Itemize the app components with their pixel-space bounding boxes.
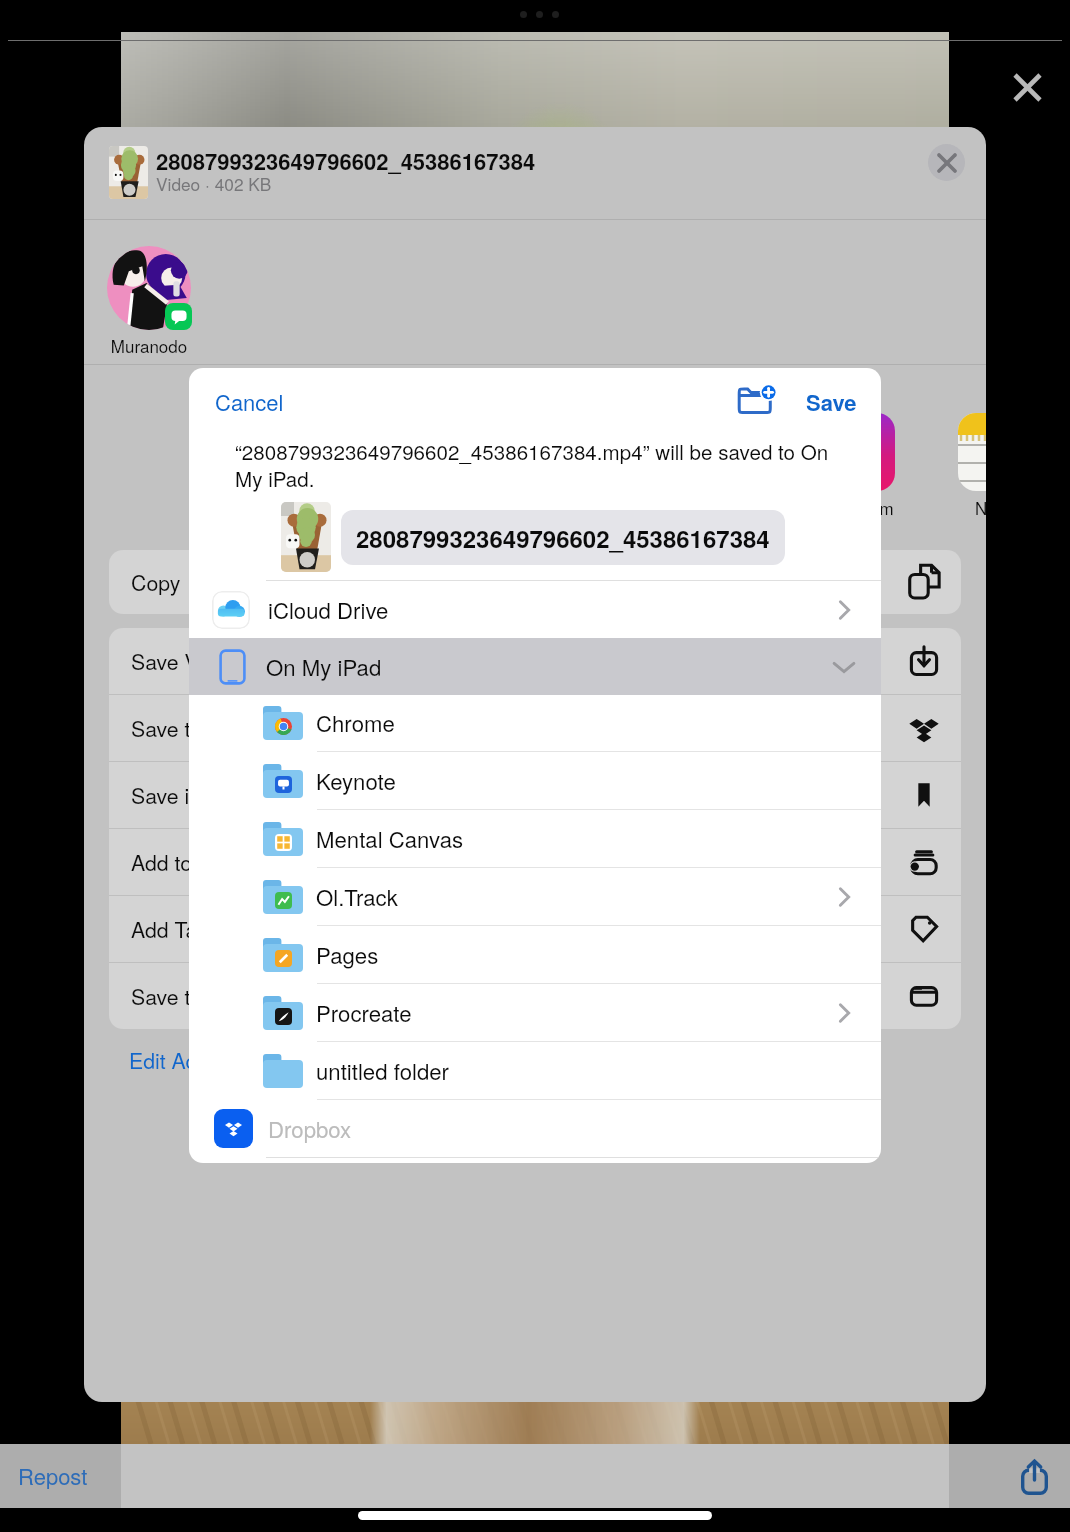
staticText: Muranodo bbox=[92, 333, 206, 357]
button[interactable]: Save to Files bbox=[131, 963, 945, 1029]
staticText: Dropbox bbox=[268, 1113, 352, 1145]
staticText: Chrome bbox=[316, 707, 395, 739]
staticText: Ol.Track bbox=[316, 881, 398, 913]
staticText: “2808799323649796602_45386167384.mp4” wi… bbox=[235, 436, 835, 493]
button[interactable]: Procreate bbox=[263, 984, 857, 1041]
button[interactable]: Pages bbox=[263, 926, 857, 983]
staticText: Edit Actions… bbox=[129, 1045, 263, 1076]
button[interactable]: Mental Canvas bbox=[263, 810, 857, 867]
staticText: Cancel bbox=[215, 386, 284, 418]
staticText: 2808799323649796602_45386167384 bbox=[156, 145, 536, 177]
button[interactable]: untitled folder bbox=[263, 1042, 857, 1099]
staticText: Instagram bbox=[807, 495, 905, 519]
button[interactable]: Save to Dropbox bbox=[131, 695, 945, 761]
button[interactable]: Ol.Track bbox=[263, 868, 857, 925]
staticText: Notes bbox=[958, 495, 986, 519]
staticText: Save in Safari bbox=[131, 780, 263, 811]
button[interactable]: Notes bbox=[958, 413, 986, 491]
button[interactable]: Edit Actions… bbox=[129, 1045, 263, 1076]
button[interactable]: 2808799323649796602_45386167384 bbox=[341, 510, 785, 565]
button[interactable]: Repost bbox=[10, 1452, 96, 1500]
button[interactable]: Close sheet bbox=[928, 144, 965, 181]
staticText: On My iPad bbox=[266, 651, 382, 683]
staticText: Video · 402 KB bbox=[156, 171, 272, 196]
staticText: Pages bbox=[316, 939, 379, 971]
staticText: Save Video bbox=[131, 646, 240, 677]
button[interactable]: Share bbox=[1008, 1450, 1060, 1502]
staticText: Repost bbox=[18, 1460, 88, 1492]
staticText: Save bbox=[806, 386, 857, 418]
staticText: Add to Cards bbox=[131, 847, 255, 878]
button[interactable]: Save bbox=[806, 386, 857, 418]
button[interactable]: Close bbox=[997, 57, 1057, 117]
staticText: Copy bbox=[131, 567, 181, 598]
button[interactable]: iCloud Drive bbox=[189, 581, 881, 638]
button[interactable]: Copy bbox=[109, 550, 961, 614]
staticText: Save to Files bbox=[131, 981, 254, 1012]
button[interactable]: Dropbox bbox=[214, 1100, 881, 1157]
staticText: Keynote bbox=[316, 765, 396, 797]
staticText: Save to Dropbox bbox=[131, 713, 288, 744]
button[interactable]: Add to Cards bbox=[131, 829, 945, 895]
button[interactable]: Save in Safari bbox=[131, 762, 945, 828]
staticText: Mental Canvas bbox=[316, 823, 464, 855]
button[interactable]: Share with Muranodo on LINE bbox=[92, 242, 206, 352]
button[interactable]: Chrome bbox=[263, 694, 857, 751]
staticText: 2808799323649796602_45386167384 bbox=[356, 521, 770, 555]
button[interactable]: AirDrop bbox=[191, 413, 269, 491]
button[interactable]: Keynote bbox=[263, 752, 857, 809]
staticText: iCloud Drive bbox=[268, 594, 389, 626]
button[interactable]: Cancel bbox=[215, 386, 284, 418]
staticText: untitled folder bbox=[316, 1055, 449, 1087]
staticText: Procreate bbox=[316, 997, 412, 1029]
staticText: Add Tags bbox=[131, 914, 220, 945]
button[interactable]: New Folder bbox=[729, 372, 783, 426]
button[interactable]: Save Video bbox=[131, 628, 945, 694]
button[interactable]: Instagram bbox=[817, 413, 895, 491]
button[interactable]: On My iPad bbox=[189, 638, 881, 695]
button[interactable]: Add Tags bbox=[131, 896, 945, 962]
